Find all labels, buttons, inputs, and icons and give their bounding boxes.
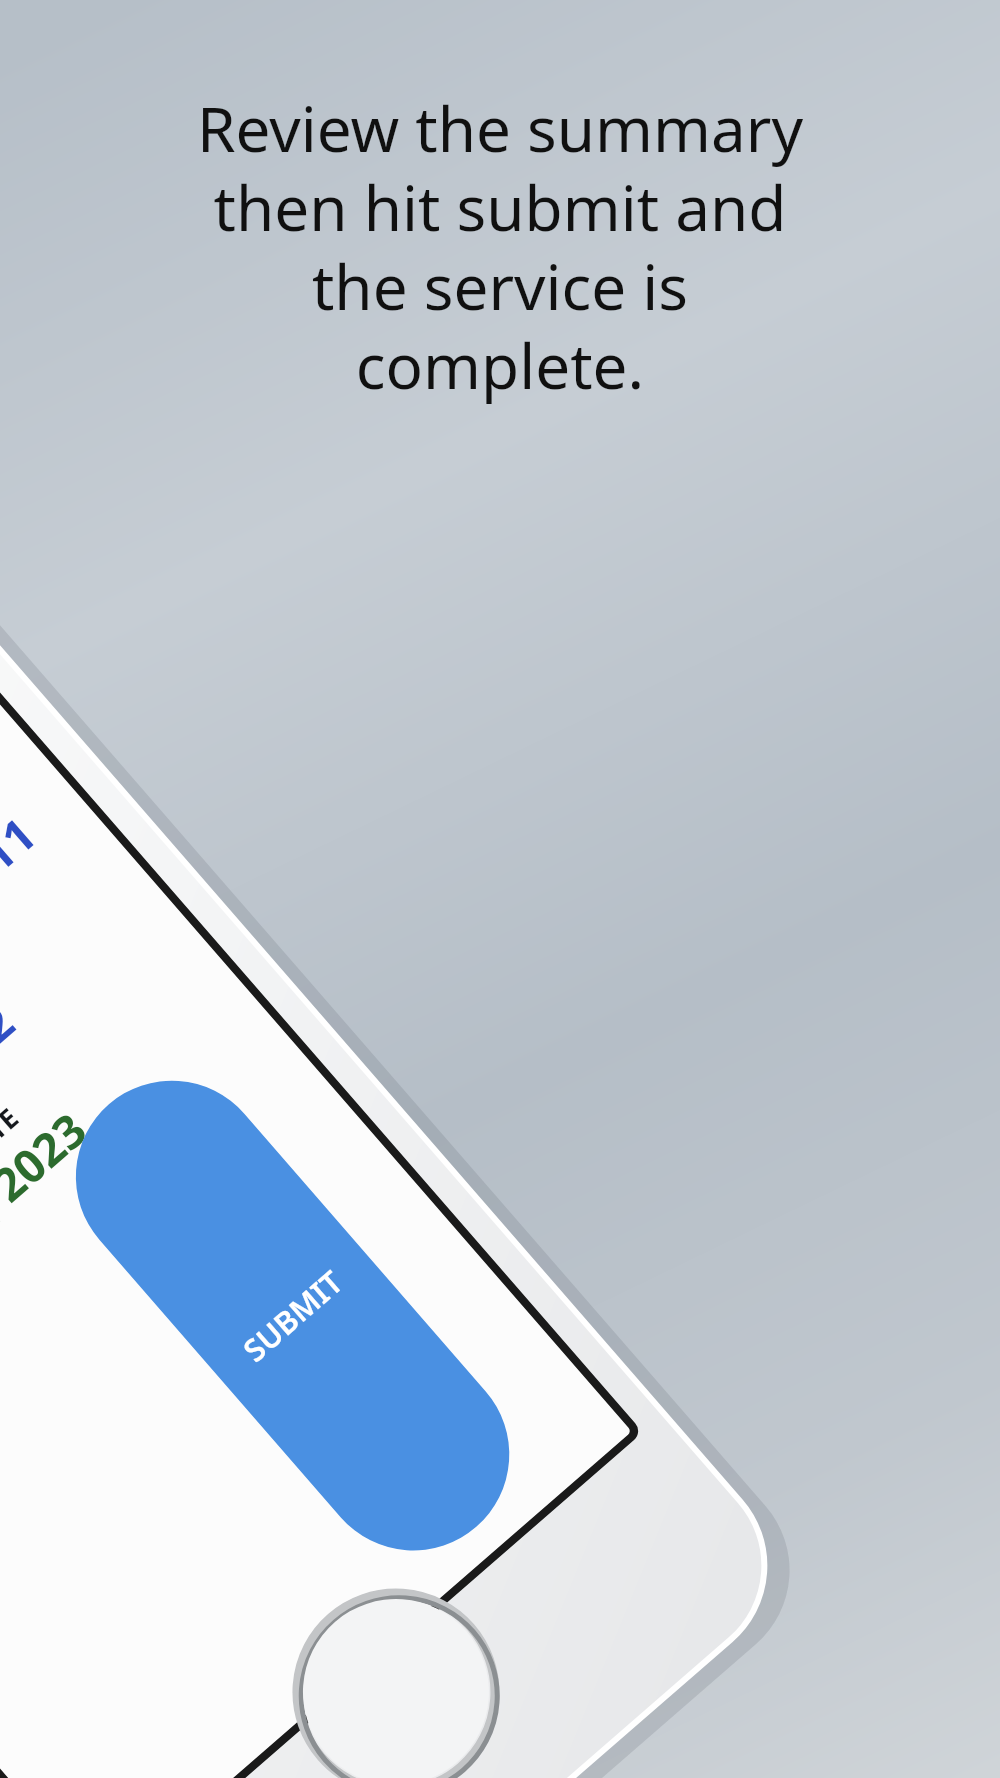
button[interactable]: Submit [330, 1160, 530, 1360]
